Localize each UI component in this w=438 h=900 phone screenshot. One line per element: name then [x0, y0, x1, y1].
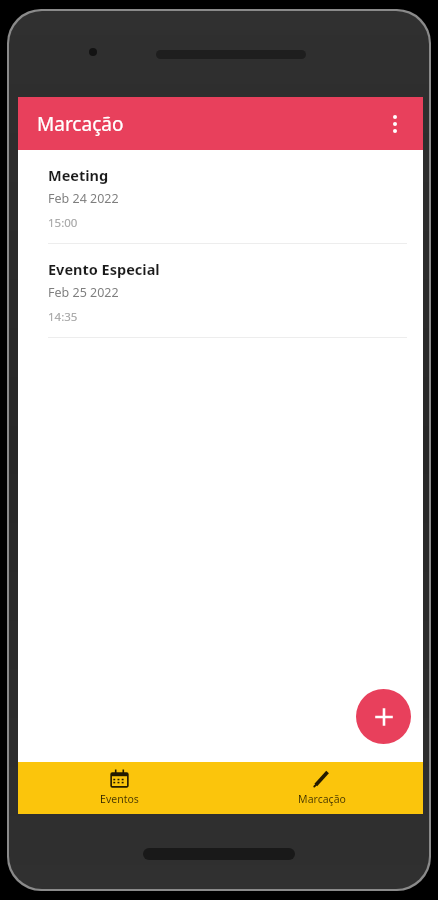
staticText: Eventos [100, 792, 139, 806]
button[interactable]: Eventos [18, 762, 220, 806]
staticText: Evento Especial [48, 259, 160, 279]
button[interactable]: Evento Especial [18, 244, 423, 338]
button[interactable]: More options [375, 104, 415, 144]
staticText: Marcação [37, 111, 124, 137]
staticText: 14:35 [48, 309, 78, 325]
staticText: Feb 25 2022 [48, 284, 119, 301]
button[interactable]: Add [356, 689, 411, 744]
button[interactable]: Meeting [18, 150, 423, 244]
button[interactable]: Marcação [220, 762, 423, 806]
staticText: Feb 24 2022 [48, 190, 119, 207]
staticText: Marcação [298, 792, 346, 806]
staticText: 15:00 [48, 215, 78, 231]
staticText: Meeting [48, 165, 109, 185]
